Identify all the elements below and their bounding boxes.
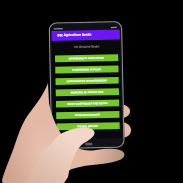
button[interactable] [0, 0, 183, 183]
